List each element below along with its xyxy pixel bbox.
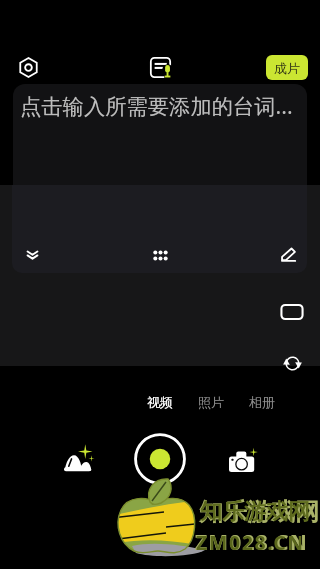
button[interactable]: Collapse xyxy=(18,240,46,268)
staticText: 相册 xyxy=(249,394,275,410)
button[interactable]: Aspect ratio xyxy=(278,298,306,326)
button[interactable]: Effects xyxy=(62,444,94,476)
button[interactable]: Camera xyxy=(228,446,258,476)
staticText: 知乐游戏网 xyxy=(200,498,310,526)
button[interactable]: 成片 xyxy=(266,55,308,80)
button[interactable]: 视频 xyxy=(141,392,178,412)
staticText: 成片 xyxy=(274,60,300,76)
staticText: ZM028.CN xyxy=(195,528,309,557)
staticText: 知乐游戏网 xyxy=(199,497,319,527)
staticText: 照片 xyxy=(198,394,224,410)
button[interactable]: 点击输入所需要添加的台词... xyxy=(13,84,307,185)
button[interactable]: Settings xyxy=(14,53,42,81)
button[interactable]: 相册 xyxy=(243,392,280,412)
staticText: 点击输入所需要添加的台词... xyxy=(20,91,293,120)
button[interactable]: Edit xyxy=(274,240,302,268)
staticText: ZM028.CN xyxy=(196,529,305,556)
button[interactable]: More xyxy=(146,241,174,269)
button[interactable]: 照片 xyxy=(192,392,229,412)
button[interactable]: Record xyxy=(132,431,188,487)
button[interactable]: Voice script xyxy=(146,53,174,81)
staticText: 视频 xyxy=(147,394,173,410)
button[interactable]: Switch camera xyxy=(278,349,306,377)
